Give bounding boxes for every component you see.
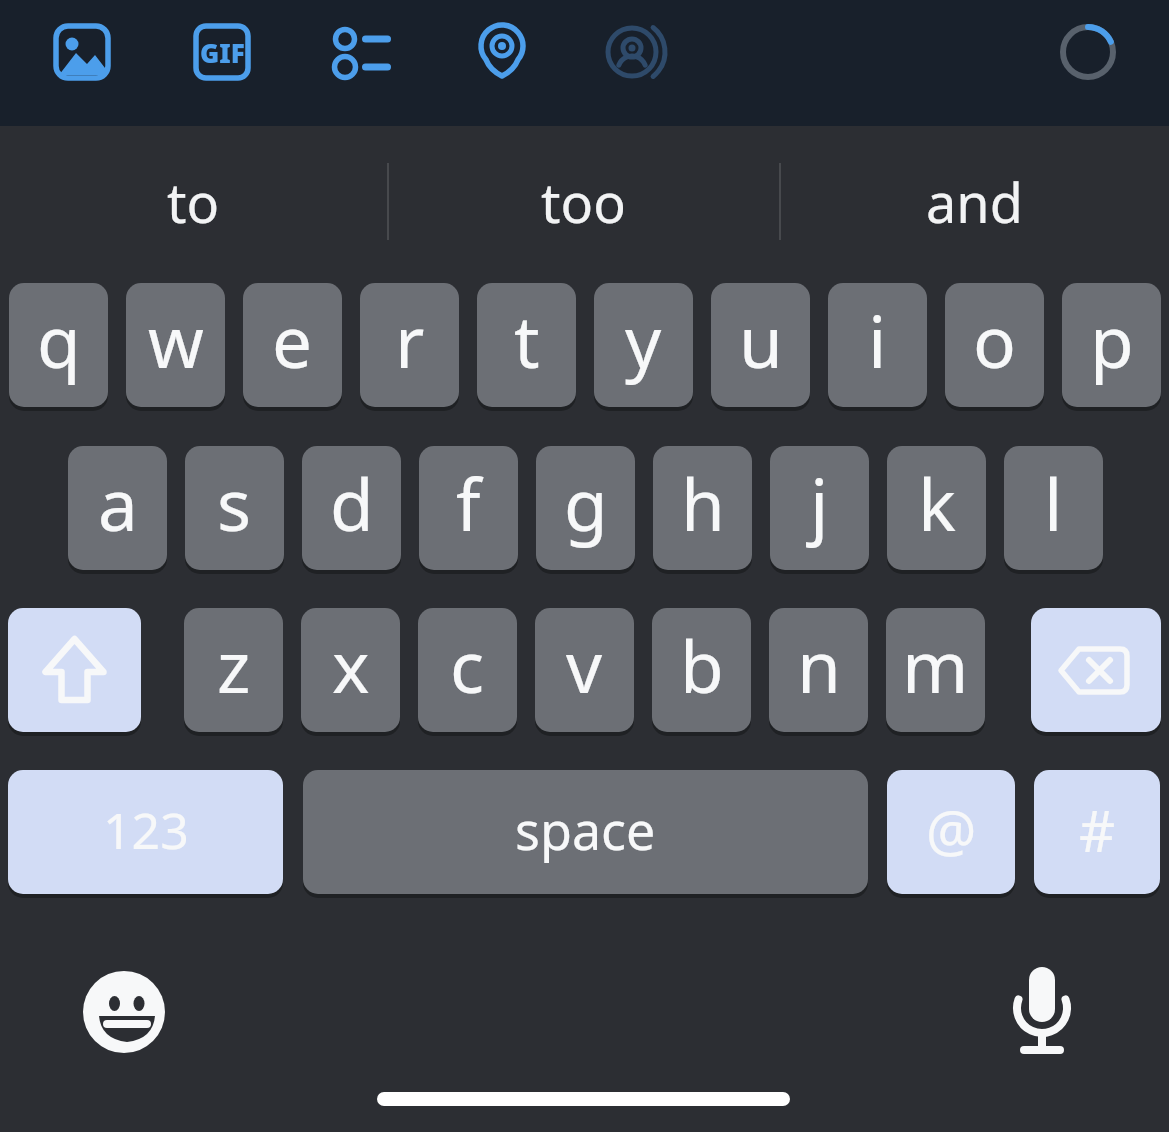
button[interactable]: k	[887, 446, 986, 570]
button[interactable]: 123	[8, 770, 283, 894]
staticText: f	[456, 455, 481, 552]
button[interactable]: o	[945, 283, 1044, 407]
button[interactable]: space	[303, 770, 868, 894]
staticText: z	[217, 617, 251, 714]
button[interactable]: b	[652, 608, 751, 732]
button[interactable]: l	[1004, 446, 1103, 570]
staticText: GIF	[200, 35, 245, 70]
button[interactable]: z	[184, 608, 283, 732]
staticText: s	[217, 455, 252, 552]
button[interactable]	[1031, 608, 1161, 732]
button[interactable]: p	[1062, 283, 1161, 407]
staticText: u	[739, 292, 783, 389]
staticText: x	[332, 617, 370, 714]
button[interactable]: i	[828, 283, 927, 407]
button[interactable]: v	[535, 608, 634, 732]
button[interactable]: h	[653, 446, 752, 570]
staticText: l	[1044, 455, 1063, 552]
staticText: a	[98, 455, 138, 552]
button[interactable]: #	[1034, 770, 1160, 894]
button[interactable]: q	[9, 283, 108, 407]
button[interactable]	[604, 20, 668, 84]
button[interactable]: to	[0, 128, 387, 276]
button[interactable]: r	[360, 283, 459, 407]
staticText: e	[272, 292, 313, 389]
staticText: d	[330, 455, 374, 552]
staticText: c	[450, 617, 485, 714]
button[interactable]: n	[769, 608, 868, 732]
staticText: k	[918, 455, 956, 552]
staticText: p	[1090, 292, 1134, 389]
staticText: t	[514, 292, 540, 389]
button[interactable]: @	[887, 770, 1015, 894]
button[interactable]: c	[418, 608, 517, 732]
button[interactable]: y	[594, 283, 693, 407]
staticText: m	[902, 617, 969, 714]
staticText: o	[973, 292, 1016, 389]
staticText: and	[926, 165, 1023, 239]
staticText: @	[926, 792, 977, 868]
button[interactable]: m	[886, 608, 985, 732]
button[interactable]: and	[780, 128, 1169, 276]
staticText: y	[625, 292, 662, 389]
button[interactable]: too	[389, 128, 778, 276]
button[interactable]	[470, 20, 534, 84]
staticText: n	[797, 617, 841, 714]
staticText: w	[148, 292, 204, 389]
staticText: 123	[103, 796, 189, 864]
button[interactable]	[84, 972, 164, 1052]
staticText: b	[680, 617, 724, 714]
button[interactable]	[331, 20, 395, 84]
button[interactable]: w	[126, 283, 225, 407]
button[interactable]: t	[477, 283, 576, 407]
staticText: space	[515, 794, 656, 865]
button[interactable]: GIF	[190, 20, 254, 84]
button[interactable]: f	[419, 446, 518, 570]
button[interactable]	[8, 608, 141, 732]
button[interactable]: e	[243, 283, 342, 407]
button[interactable]: d	[302, 446, 401, 570]
button[interactable]: g	[536, 446, 635, 570]
staticText: g	[564, 455, 608, 552]
button[interactable]: a	[68, 446, 167, 570]
button[interactable]	[1000, 960, 1088, 1048]
staticText: i	[868, 292, 887, 389]
staticText: v	[566, 617, 603, 714]
staticText: h	[681, 455, 725, 552]
button[interactable]: s	[185, 446, 284, 570]
staticText: r	[395, 292, 425, 389]
staticText: #	[1079, 792, 1116, 868]
button[interactable]: x	[301, 608, 400, 732]
staticText: q	[37, 292, 81, 389]
button[interactable]: j	[770, 446, 869, 570]
staticText: too	[541, 165, 626, 239]
button[interactable]: u	[711, 283, 810, 407]
button[interactable]	[50, 20, 114, 84]
staticText: to	[167, 165, 220, 239]
staticText: j	[810, 455, 829, 552]
